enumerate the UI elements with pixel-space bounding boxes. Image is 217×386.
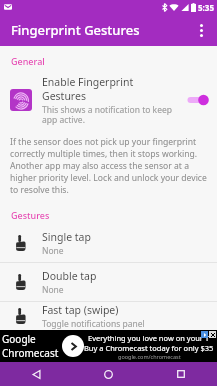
staticText: Fingerprint Gestures <box>11 21 140 39</box>
staticText: None <box>42 245 64 257</box>
staticText: Everything you love now on your T <box>88 333 210 343</box>
staticText: Enable Fingerprint Gestures <box>42 75 178 103</box>
button[interactable]: Recent apps <box>166 362 196 386</box>
staticText: Chromecast <box>2 346 59 360</box>
staticText: This shows a notification to keep app ac… <box>42 104 178 125</box>
button[interactable]: Double tap <box>0 263 217 301</box>
staticText: General <box>11 55 45 67</box>
staticText: google.com/chromecast <box>118 353 181 360</box>
staticText: Gestures <box>11 209 50 221</box>
button[interactable]: Open advertisement <box>62 335 84 357</box>
staticText: 5:35 <box>198 2 214 13</box>
button[interactable]: Back <box>21 362 51 386</box>
button[interactable]: Enable Fingerprint Gestures <box>0 71 217 129</box>
staticText: Single tap <box>42 230 91 244</box>
staticText: Double tap <box>42 269 97 283</box>
staticText: Fast tap (swipe) <box>42 303 119 317</box>
button[interactable]: Enable Fingerprint Gestures toggle <box>182 90 212 110</box>
staticText: Google <box>2 332 36 346</box>
staticText: If the sensor does not pick up your fing… <box>10 136 207 196</box>
staticText: None <box>42 284 64 296</box>
button[interactable]: Single tap <box>0 224 217 262</box>
staticText: Toggle notifications panel <box>42 318 145 330</box>
staticText: Buy a Chromecast today for only $35 <box>84 343 214 353</box>
button[interactable]: Fast tap (swipe) <box>0 302 217 330</box>
button[interactable]: Home <box>93 362 123 386</box>
button[interactable]: More options <box>188 17 214 43</box>
button[interactable]: Google <box>0 330 217 362</box>
